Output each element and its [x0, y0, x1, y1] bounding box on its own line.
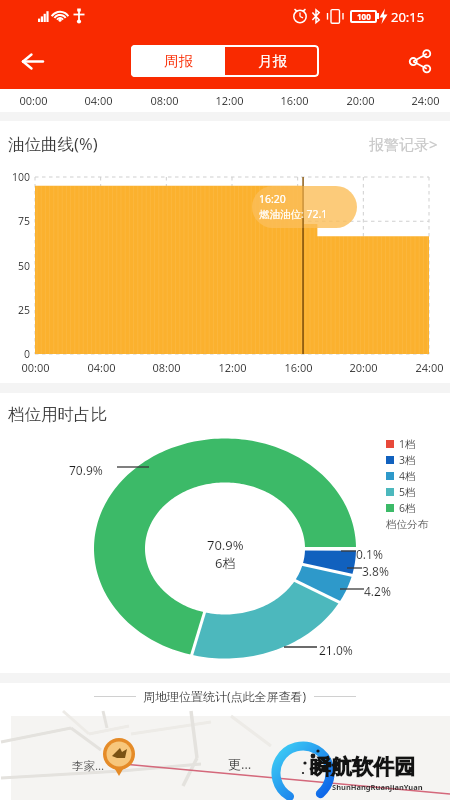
staticText: 0 — [23, 347, 30, 361]
button[interactable]: Share — [398, 39, 442, 83]
staticText: 100 — [357, 11, 371, 22]
staticText: 6档 — [399, 501, 416, 515]
staticText: 04:00 — [87, 360, 116, 375]
staticText: 李家… — [72, 758, 105, 774]
staticText: 瞬航软件园 — [310, 754, 415, 780]
staticText: 16:20 — [259, 192, 286, 206]
staticText: 20:00 — [346, 93, 375, 108]
staticText: 0.1% — [356, 546, 383, 562]
button[interactable] — [11, 716, 450, 800]
staticText: ShunHangRuanJianYuan — [332, 782, 423, 792]
staticText: 周报 — [164, 52, 193, 70]
button[interactable]: 报警记录> — [369, 134, 438, 154]
staticText: 4.2% — [364, 583, 391, 599]
staticText: 21.0% — [319, 642, 353, 658]
staticText: 00:00 — [21, 360, 50, 375]
staticText: 档位用时占比 — [8, 404, 107, 425]
staticText: 1档 — [399, 437, 416, 451]
staticText: 油位曲线(%) — [8, 132, 98, 155]
staticText: 6档 — [215, 554, 236, 572]
staticText: 5档 — [399, 485, 416, 499]
staticText: 24:00 — [411, 93, 440, 108]
button[interactable]: 周地理位置统计(点此全屏查看) — [0, 683, 450, 709]
staticText: 月报 — [258, 52, 287, 70]
staticText: 04:00 — [84, 93, 113, 108]
staticText: 20:15 — [391, 8, 425, 26]
staticText: 08:00 — [152, 360, 181, 375]
staticText: 12:00 — [215, 93, 244, 108]
staticText: 3.8% — [362, 563, 389, 579]
staticText: 报警记录> — [369, 134, 438, 154]
staticText: 70.9% — [207, 536, 244, 554]
staticText: 08:00 — [150, 93, 179, 108]
staticText: 3档 — [399, 453, 416, 467]
staticText: 24:00 — [415, 360, 444, 375]
staticText: 周地理位置统计(点此全屏查看) — [143, 688, 307, 704]
staticText: 25 — [17, 303, 30, 317]
staticText: 100 — [11, 170, 30, 184]
staticText: 75 — [17, 214, 30, 228]
staticText: 16:00 — [284, 360, 313, 375]
staticText: 更… — [228, 755, 252, 773]
staticText: 16:00 — [280, 93, 309, 108]
button[interactable]: 月报 — [225, 45, 319, 77]
staticText: 00:00 — [19, 93, 48, 108]
button[interactable]: 周报 — [131, 45, 225, 77]
staticText: 档位分布 — [386, 518, 428, 531]
staticText: 20:00 — [349, 360, 378, 375]
staticText: 70.9% — [69, 462, 103, 478]
button[interactable]: Back — [10, 39, 54, 83]
staticText: 50 — [17, 259, 30, 273]
staticText: 燃油油位: 72.1 — [259, 207, 328, 221]
staticText: 4档 — [399, 469, 416, 483]
staticText: 12:00 — [218, 360, 247, 375]
